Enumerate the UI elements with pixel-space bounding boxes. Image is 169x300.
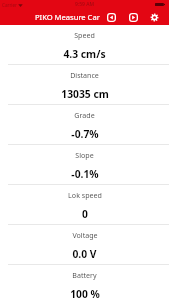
button[interactable]: Play <box>126 10 141 25</box>
staticText: Lok speed <box>68 190 102 200</box>
button[interactable]: Speed <box>0 25 169 64</box>
staticText: -0.1% <box>71 167 99 181</box>
staticText: 4.3 cm/s <box>63 47 106 61</box>
staticText: 13035 cm <box>61 87 109 101</box>
staticText: 0 <box>82 207 88 221</box>
staticText: Voltage <box>72 230 98 240</box>
button[interactable]: Slope <box>0 145 169 184</box>
staticText: Speed <box>74 30 95 40</box>
staticText: Distance <box>70 70 99 80</box>
staticText: 100 % <box>70 287 100 300</box>
staticText: Carrier <box>2 2 17 8</box>
button[interactable]: Voltage <box>0 225 169 264</box>
button[interactable]: Grade <box>0 105 169 144</box>
staticText: Grade <box>74 110 95 120</box>
button[interactable]: Rewind <box>104 10 119 25</box>
button[interactable]: Battery <box>0 265 169 300</box>
staticText: 9:59 AM <box>75 1 95 8</box>
staticText: Slope <box>75 150 94 160</box>
staticText: Battery <box>72 270 97 280</box>
button[interactable]: Distance <box>0 65 169 104</box>
staticText: 0.0 V <box>72 247 97 261</box>
staticText: -0.7% <box>71 127 99 141</box>
staticText: PIKO Measure Car <box>35 12 100 22</box>
button[interactable]: Settings <box>147 10 162 25</box>
button[interactable]: Lok speed <box>0 185 169 224</box>
